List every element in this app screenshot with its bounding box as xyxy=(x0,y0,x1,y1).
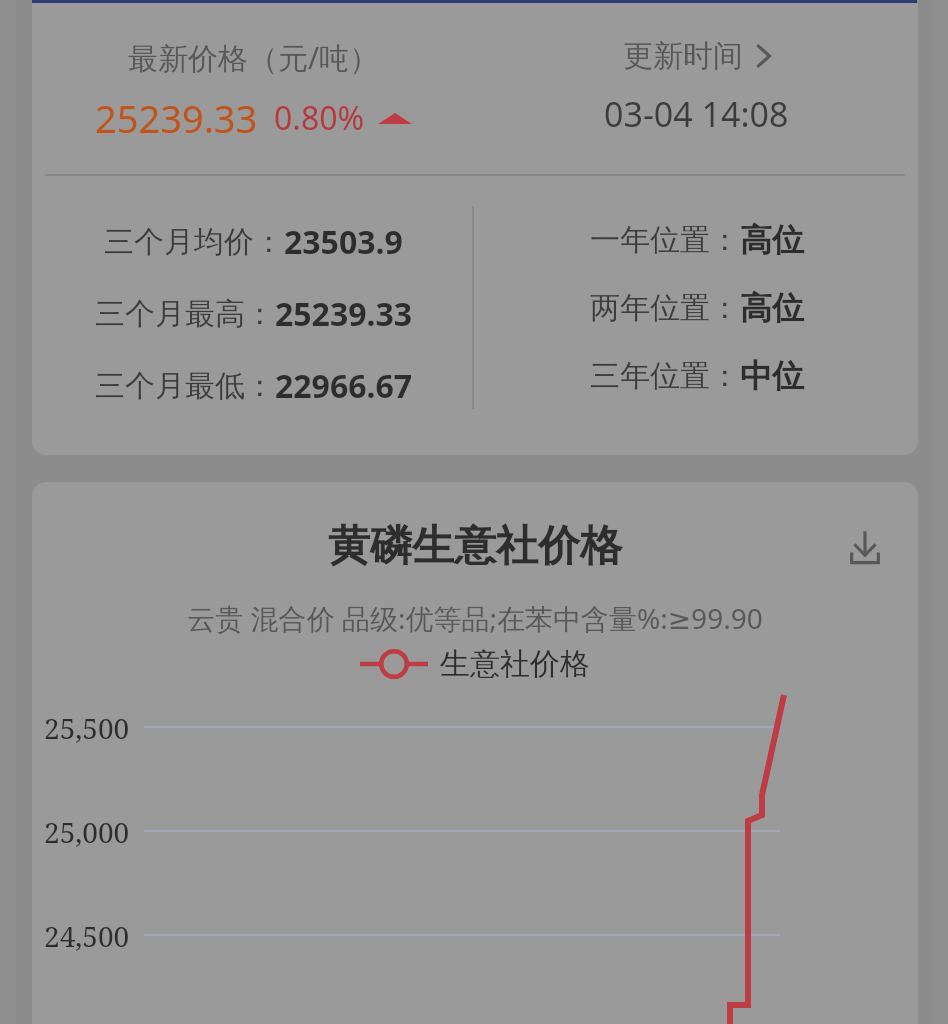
staticText: 中位 xyxy=(740,356,804,396)
staticText: 23503.9 xyxy=(284,220,403,264)
button[interactable]: Download xyxy=(842,524,888,570)
staticText: 更新时间 xyxy=(623,37,743,75)
button[interactable]: 最新价格（元/吨） xyxy=(32,37,475,144)
staticText: 25239.33 xyxy=(275,292,413,336)
button[interactable]: 三年位置： xyxy=(590,356,804,396)
staticText: 25239.33 xyxy=(95,92,258,144)
staticText: 最新价格（元/吨） xyxy=(128,37,380,78)
staticText: 22966.67 xyxy=(275,364,413,408)
staticText: 25,000 xyxy=(44,813,130,851)
button[interactable]: 三个月均价： xyxy=(104,220,403,264)
button[interactable]: 一年位置： xyxy=(590,220,804,260)
staticText: 三个月均价： xyxy=(104,223,284,261)
staticText: 一年位置： xyxy=(590,221,740,259)
staticText: 24,500 xyxy=(44,917,130,955)
staticText: 两年位置： xyxy=(590,289,740,327)
staticText: 三年位置： xyxy=(590,357,740,395)
button[interactable]: 三个月最高： xyxy=(95,292,413,336)
staticText: 高位 xyxy=(740,220,804,260)
staticText: 黄磷生意社价格 xyxy=(32,520,918,573)
staticText: 生意社价格 xyxy=(440,645,590,683)
staticText: 03-04 14:08 xyxy=(604,91,789,137)
staticText: 三个月最低： xyxy=(95,367,275,405)
button[interactable]: 两年位置： xyxy=(590,288,804,328)
button[interactable]: 三个月最低： xyxy=(95,364,413,408)
staticText: 高位 xyxy=(740,288,804,328)
button[interactable]: 更新时间 xyxy=(475,37,918,137)
staticText: 三个月最高： xyxy=(95,295,275,333)
staticText: 25,500 xyxy=(44,709,130,747)
staticText: 云贵 混合价 品级:优等品;在苯中含量%:≥99.90 xyxy=(32,599,918,637)
staticText: 0.80% xyxy=(274,96,365,140)
